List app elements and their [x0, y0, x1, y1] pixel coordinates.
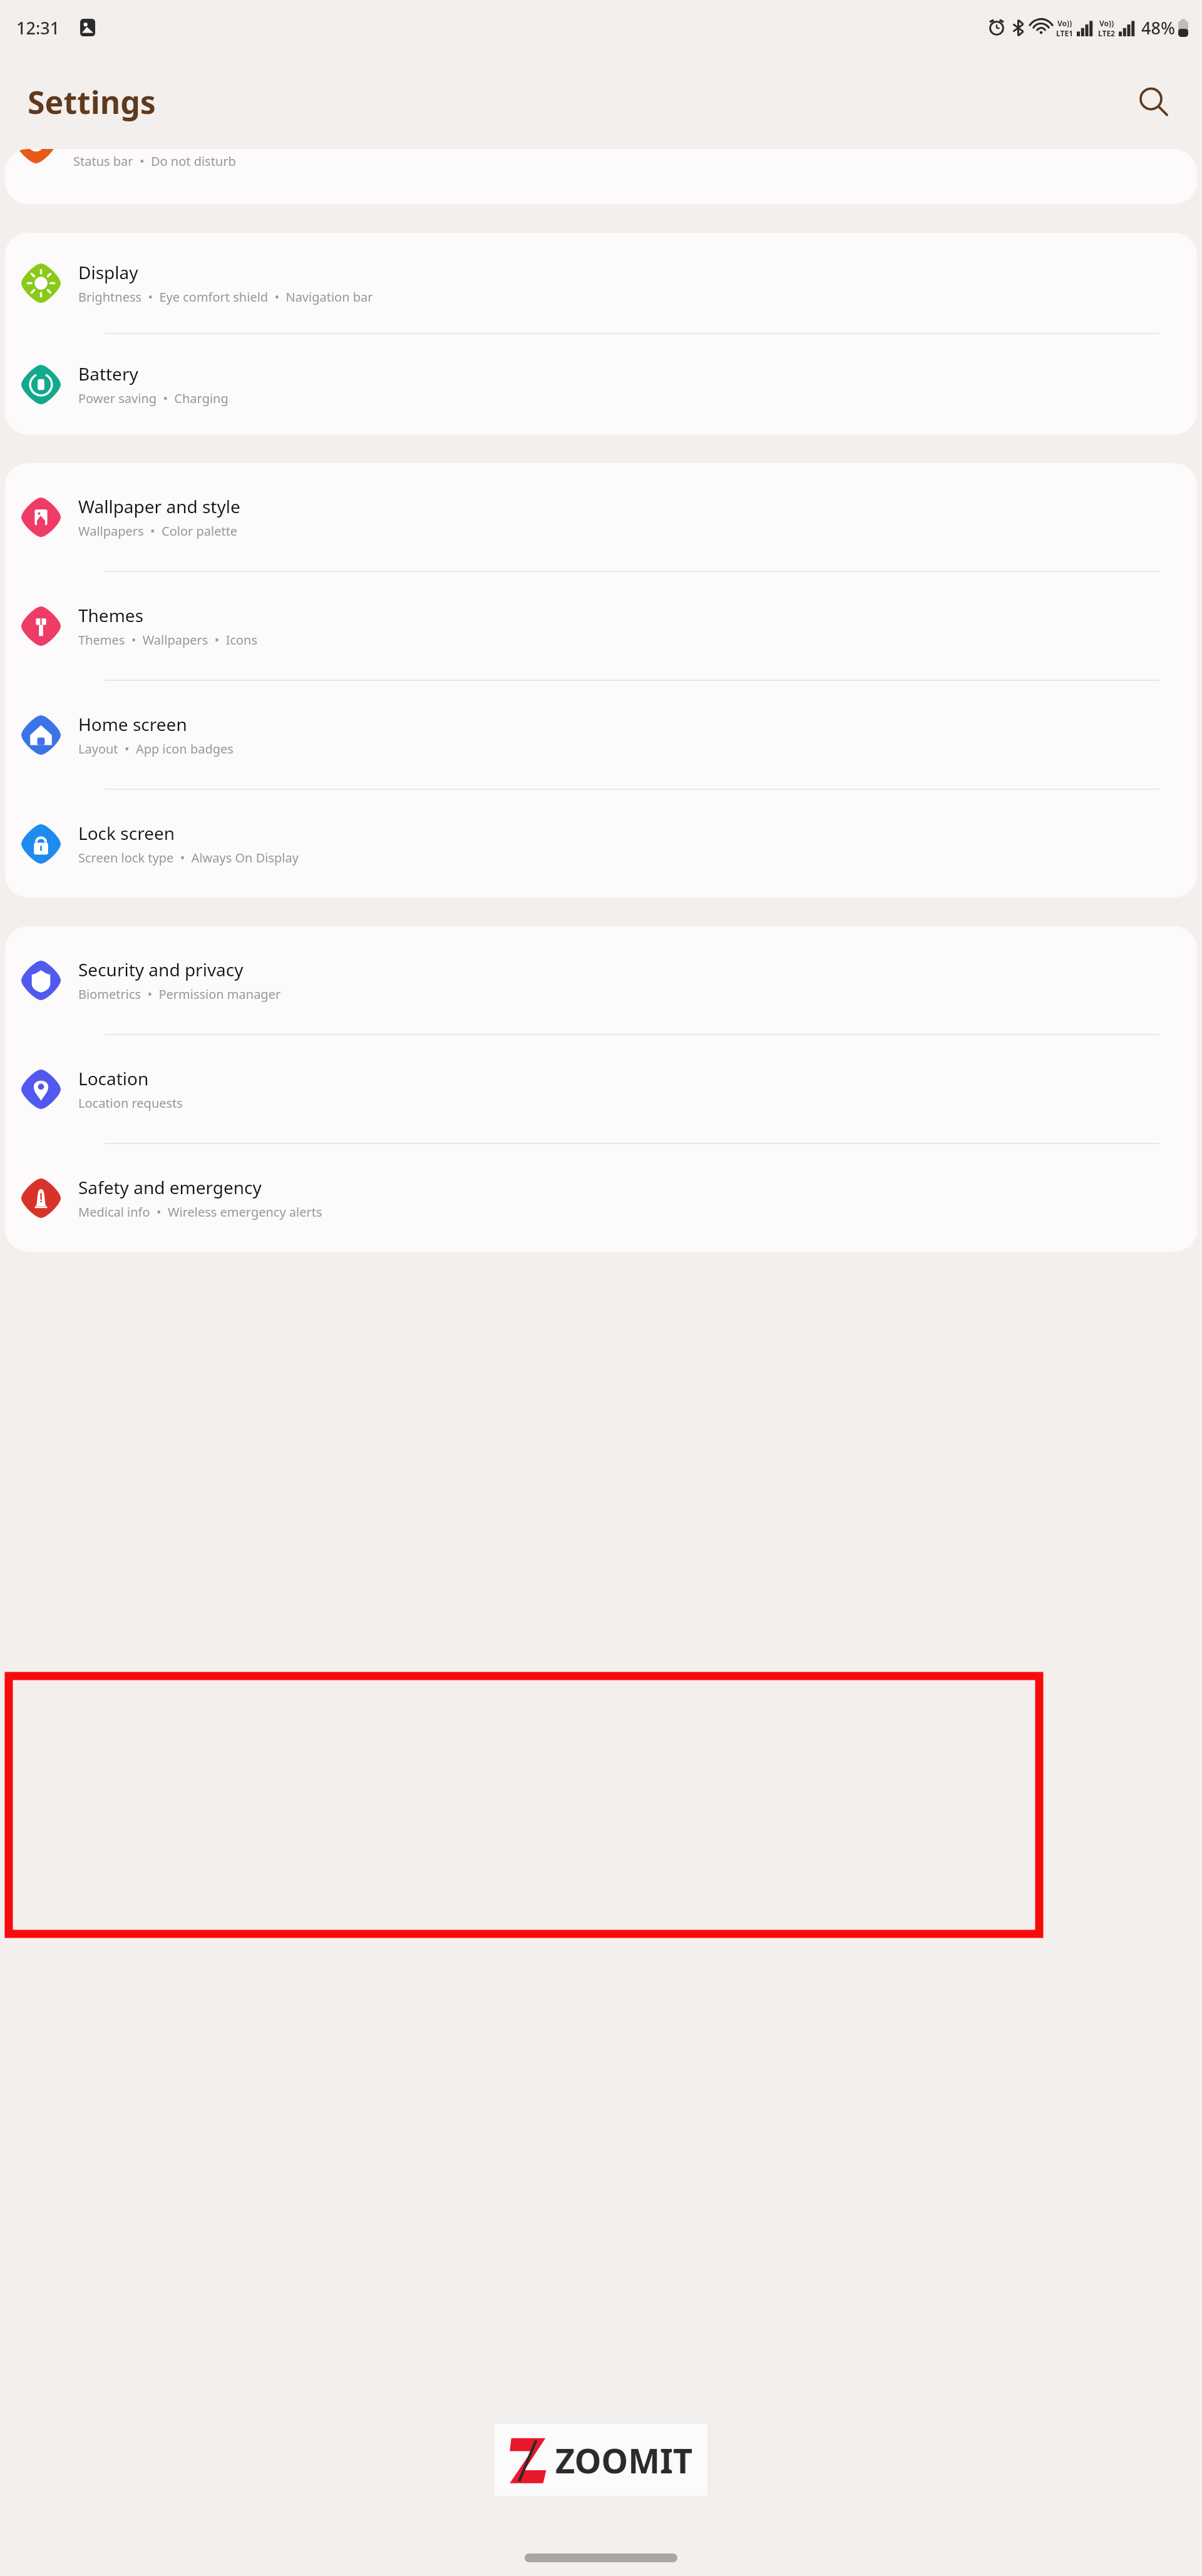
- staticText: Settings: [28, 81, 156, 123]
- button[interactable]: Wallpaper and style: [5, 463, 1197, 571]
- staticText: Layout • App icon badges: [78, 740, 234, 757]
- staticText: Themes • Wallpapers • Icons: [78, 631, 258, 648]
- button[interactable]: Status bar • Do not disturb: [5, 149, 1197, 204]
- staticText: Wallpaper and style: [78, 494, 240, 518]
- button[interactable]: Home screen: [5, 681, 1197, 789]
- staticText: Display: [78, 260, 138, 284]
- button[interactable]: Search: [1128, 77, 1178, 127]
- staticText: Vo)): [1099, 18, 1114, 28]
- staticText: Biometrics • Permission manager: [78, 986, 281, 1003]
- staticText: 48%: [1141, 16, 1175, 39]
- staticText: Security and privacy: [78, 958, 244, 981]
- staticText: Status bar • Do not disturb: [73, 153, 236, 170]
- staticText: LTE2: [1098, 28, 1115, 38]
- staticText: Lock screen: [78, 821, 175, 845]
- staticText: Battery: [78, 362, 138, 386]
- staticText: Screen lock type • Always On Display: [78, 849, 299, 866]
- staticText: Location requests: [78, 1095, 183, 1112]
- staticText: Home screen: [78, 712, 187, 736]
- button[interactable]: Security and privacy: [5, 926, 1197, 1034]
- staticText: Safety and emergency: [78, 1175, 262, 1199]
- staticText: 12:31: [16, 16, 60, 39]
- button[interactable]: Location: [5, 1035, 1197, 1143]
- staticText: ZOOMIT: [555, 2437, 693, 2483]
- staticText: Themes: [78, 603, 144, 627]
- staticText: Medical info • Wireless emergency alerts: [78, 1204, 322, 1220]
- staticText: Wallpapers • Color palette: [78, 523, 238, 539]
- button[interactable]: Display: [5, 233, 1197, 333]
- button[interactable]: Safety and emergency: [5, 1144, 1197, 1252]
- staticText: Brightness • Eye comfort shield • Naviga…: [78, 289, 373, 305]
- button[interactable]: Lock screen: [5, 790, 1197, 897]
- staticText: Location: [78, 1066, 149, 1090]
- staticText: Vo)): [1057, 18, 1072, 28]
- staticText: LTE1: [1056, 28, 1073, 38]
- button[interactable]: Battery: [5, 334, 1197, 434]
- staticText: Power saving • Charging: [78, 390, 229, 407]
- button[interactable]: Themes: [5, 572, 1197, 680]
